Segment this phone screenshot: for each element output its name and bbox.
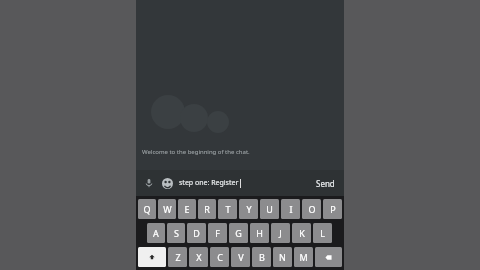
button[interactable]: L bbox=[313, 223, 332, 243]
button[interactable]: K bbox=[292, 223, 311, 243]
button[interactable]: Send bbox=[312, 174, 339, 193]
staticText: Y bbox=[246, 203, 252, 215]
button[interactable]: Q bbox=[138, 199, 156, 219]
staticText: Send bbox=[316, 178, 335, 189]
staticText: O bbox=[308, 203, 316, 215]
staticText: R bbox=[204, 203, 210, 215]
staticText: V bbox=[238, 251, 244, 263]
button[interactable]: S bbox=[167, 223, 185, 243]
button[interactable]: step one: Register bbox=[179, 178, 312, 188]
staticText: H bbox=[256, 227, 263, 239]
button[interactable]: U bbox=[260, 199, 279, 219]
button[interactable]: Voice message bbox=[141, 175, 157, 191]
staticText: W bbox=[163, 203, 172, 215]
staticText: C bbox=[217, 251, 223, 263]
staticText: Q bbox=[143, 203, 151, 215]
button[interactable]: I bbox=[281, 199, 300, 219]
staticText: N bbox=[279, 251, 286, 263]
button[interactable]: Shift bbox=[138, 247, 166, 267]
button[interactable]: G bbox=[229, 223, 248, 243]
staticText: S bbox=[174, 227, 179, 239]
button[interactable]: D bbox=[187, 223, 206, 243]
staticText: Welcome to the beginning of the chat. bbox=[142, 148, 250, 156]
staticText: K bbox=[299, 227, 305, 239]
button[interactable]: E bbox=[178, 199, 196, 219]
staticText: P bbox=[330, 203, 336, 215]
staticText: D bbox=[193, 227, 200, 239]
button[interactable]: A bbox=[147, 223, 165, 243]
button[interactable]: O bbox=[302, 199, 321, 219]
button[interactable]: T bbox=[218, 199, 237, 219]
button[interactable]: Y bbox=[239, 199, 258, 219]
button[interactable]: Z bbox=[168, 247, 187, 267]
staticText: G bbox=[235, 227, 242, 239]
button[interactable]: V bbox=[231, 247, 250, 267]
button[interactable]: F bbox=[208, 223, 227, 243]
button[interactable]: W bbox=[158, 199, 176, 219]
button[interactable]: Emoji bbox=[159, 175, 175, 191]
staticText: I bbox=[289, 203, 293, 215]
button[interactable]: H bbox=[250, 223, 269, 243]
staticText: Z bbox=[175, 251, 181, 263]
staticText: J bbox=[279, 227, 282, 239]
button[interactable]: X bbox=[189, 247, 208, 267]
staticText: B bbox=[259, 251, 265, 263]
button[interactable]: P bbox=[323, 199, 342, 219]
button[interactable]: C bbox=[210, 247, 229, 267]
staticText: M bbox=[299, 251, 308, 263]
button[interactable]: R bbox=[198, 199, 216, 219]
staticText: F bbox=[215, 227, 220, 239]
staticText: X bbox=[196, 251, 202, 263]
staticText: T bbox=[225, 203, 231, 215]
staticText: E bbox=[184, 203, 190, 215]
button[interactable]: M bbox=[294, 247, 313, 267]
button[interactable]: B bbox=[252, 247, 271, 267]
button[interactable]: J bbox=[271, 223, 290, 243]
button[interactable]: Backspace bbox=[315, 247, 342, 267]
staticText: A bbox=[153, 227, 159, 239]
staticText: L bbox=[320, 227, 325, 239]
button[interactable]: N bbox=[273, 247, 292, 267]
staticText: step one: Register bbox=[179, 178, 239, 188]
staticText: U bbox=[266, 203, 273, 215]
